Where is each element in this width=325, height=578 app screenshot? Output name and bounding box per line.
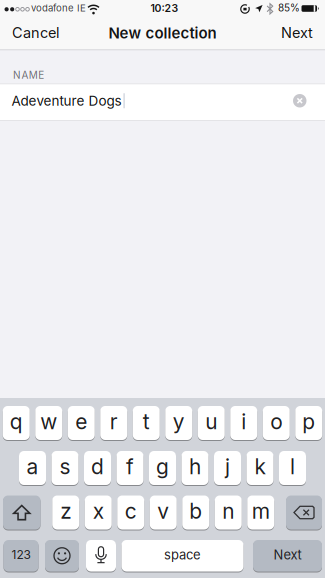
button[interactable]: e — [68, 406, 95, 440]
button[interactable]: r — [100, 406, 127, 440]
staticText: k — [254, 454, 265, 479]
staticText: z — [60, 498, 71, 524]
button[interactable]: j — [214, 451, 241, 485]
staticText: p — [302, 409, 315, 434]
staticText: m — [252, 498, 270, 524]
button[interactable]: w — [35, 406, 62, 440]
button[interactable]: p — [295, 406, 322, 440]
staticText: a — [26, 454, 38, 479]
staticText: New collection — [108, 24, 216, 42]
button[interactable]: c — [117, 495, 144, 529]
button[interactable]: g — [149, 451, 176, 485]
staticText: q — [10, 409, 23, 434]
button[interactable]: n — [215, 495, 242, 529]
staticText: b — [189, 498, 202, 524]
staticText: s — [59, 454, 70, 479]
button[interactable]: t — [133, 406, 160, 440]
button[interactable]: Delete — [286, 495, 322, 529]
button[interactable]: l — [279, 451, 306, 485]
staticText: NAME — [13, 69, 44, 81]
staticText: j — [225, 454, 230, 479]
staticText: Adeventure Dogs — [11, 93, 121, 109]
button[interactable]: x — [85, 495, 112, 529]
button[interactable]: v — [150, 495, 177, 529]
button[interactable]: space — [121, 540, 243, 571]
button[interactable]: h — [181, 451, 208, 485]
staticText: x — [93, 498, 104, 524]
button[interactable]: Shift — [3, 495, 40, 529]
button[interactable]: d — [84, 451, 111, 485]
button[interactable]: f — [116, 451, 143, 485]
button[interactable]: Next — [281, 24, 313, 41]
staticText: l — [290, 454, 295, 479]
button[interactable]: o — [263, 406, 290, 440]
button[interactable]: m — [247, 495, 274, 529]
staticText: i — [241, 409, 246, 434]
button[interactable]: Next — [253, 540, 322, 571]
staticText: f — [126, 454, 134, 479]
button[interactable]: Clear text — [293, 94, 306, 107]
button[interactable]: z — [52, 495, 79, 529]
button[interactable]: q — [3, 406, 30, 440]
button[interactable]: y — [165, 406, 192, 440]
staticText: g — [156, 454, 169, 479]
staticText: Next — [281, 24, 313, 41]
staticText: Next — [273, 547, 301, 563]
staticText: c — [125, 498, 137, 524]
button[interactable]: Cancel — [12, 24, 60, 41]
button[interactable]: b — [182, 495, 209, 529]
button[interactable]: u — [198, 406, 225, 440]
staticText: t — [143, 409, 150, 434]
staticText: Cancel — [12, 24, 60, 41]
staticText: e — [75, 409, 87, 434]
staticText: 123 — [11, 547, 30, 562]
button[interactable]: s — [51, 451, 78, 485]
staticText: o — [270, 409, 282, 434]
staticText: space — [164, 547, 201, 563]
button[interactable]: i — [230, 406, 257, 440]
button[interactable]: Adeventure Dogs — [0, 83, 325, 121]
staticText: d — [91, 454, 104, 479]
button[interactable]: k — [246, 451, 273, 485]
staticText: y — [173, 409, 185, 434]
button[interactable]: 123 — [3, 540, 38, 571]
staticText: w — [40, 409, 57, 434]
staticText: h — [189, 454, 201, 479]
staticText: v — [157, 498, 169, 524]
button[interactable]: Dictation — [86, 540, 116, 571]
staticText: vodafone IE — [31, 2, 86, 14]
staticText: n — [222, 498, 234, 524]
button[interactable]: Emoji — [45, 540, 79, 571]
button[interactable]: a — [19, 451, 46, 485]
staticText: r — [110, 409, 118, 434]
staticText: u — [205, 409, 217, 434]
staticText: 10:23 — [150, 2, 178, 14]
staticText: 85% — [278, 2, 300, 14]
